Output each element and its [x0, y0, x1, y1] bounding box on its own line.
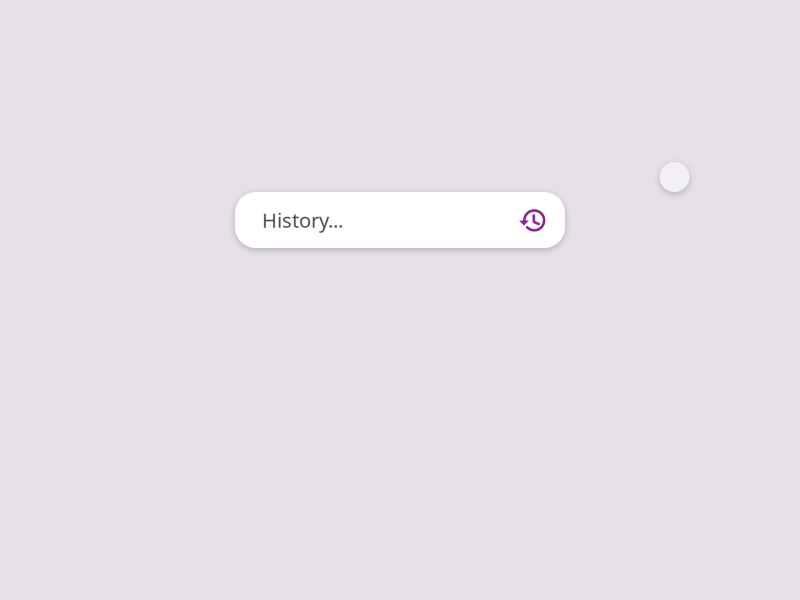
- button[interactable]: History...: [235, 192, 565, 248]
- button[interactable]: Show history: [519, 207, 546, 232]
- staticText: History...: [262, 207, 343, 233]
- button[interactable]: Profile: [659, 162, 689, 192]
